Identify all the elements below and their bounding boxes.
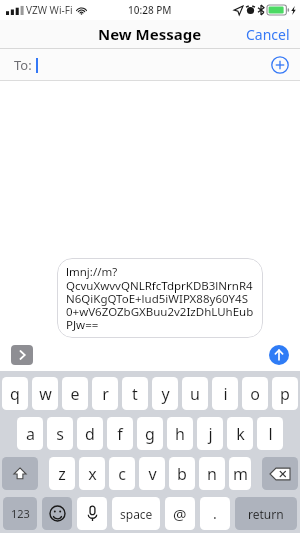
- button[interactable]: x: [79, 457, 105, 490]
- button[interactable]: y: [152, 377, 178, 410]
- button[interactable]: n: [199, 457, 225, 490]
- button[interactable]: To:: [0, 49, 300, 81]
- staticText: lmnj://m? QcvuXwvvQNLRfcTdprKDB3lNrnR4 N…: [66, 264, 254, 332]
- staticText: i: [223, 383, 228, 405]
- button[interactable]: Add contact: [271, 56, 289, 74]
- button[interactable]: Show apps: [11, 345, 33, 365]
- staticText: m: [233, 463, 248, 485]
- staticText: return: [248, 506, 284, 522]
- staticText: j: [208, 423, 213, 445]
- staticText: c: [118, 463, 126, 485]
- button[interactable]: a: [17, 417, 43, 450]
- button[interactable]: lmnj://m? QcvuXwvvQNLRfcTdprKDB3lNrnR4 N…: [66, 264, 254, 332]
- staticText: z: [58, 463, 66, 485]
- button[interactable]: r: [92, 377, 118, 410]
- staticText: t: [132, 383, 138, 405]
- button[interactable]: u: [182, 377, 208, 410]
- staticText: s: [56, 423, 64, 445]
- button[interactable]: .: [200, 497, 230, 530]
- button[interactable]: z: [49, 457, 75, 490]
- button[interactable]: Send: [269, 345, 289, 365]
- staticText: New Message: [98, 24, 202, 44]
- button[interactable]: Dictate: [77, 497, 107, 530]
- button[interactable]: @: [165, 497, 195, 530]
- staticText: r: [102, 383, 109, 405]
- button[interactable]: m: [229, 457, 251, 490]
- staticText: a: [26, 423, 35, 445]
- staticText: To:: [14, 56, 32, 74]
- button[interactable]: p: [272, 377, 298, 410]
- button[interactable]: q: [2, 377, 28, 410]
- staticText: o: [250, 383, 260, 405]
- staticText: @: [173, 504, 187, 524]
- button[interactable]: o: [242, 377, 268, 410]
- staticText: u: [190, 383, 200, 405]
- staticText: 10:28 PM: [128, 3, 172, 17]
- button[interactable]: h: [167, 417, 193, 450]
- staticText: k: [236, 423, 245, 445]
- staticText: v: [148, 463, 157, 485]
- staticText: l: [268, 423, 273, 445]
- staticText: d: [85, 423, 95, 445]
- button[interactable]: Backspace: [262, 457, 298, 490]
- staticText: e: [70, 383, 80, 405]
- button[interactable]: c: [109, 457, 135, 490]
- staticText: g: [145, 423, 155, 445]
- staticText: n: [207, 463, 217, 485]
- button[interactable]: Shift: [2, 457, 38, 490]
- button[interactable]: l: [257, 417, 283, 450]
- staticText: q: [10, 383, 20, 405]
- staticText: p: [280, 383, 290, 405]
- button[interactable]: space: [112, 497, 160, 530]
- button[interactable]: j: [197, 417, 223, 450]
- button[interactable]: v: [139, 457, 165, 490]
- staticText: VZW Wi-Fi: [26, 3, 73, 17]
- staticText: x: [88, 463, 97, 485]
- staticText: 123: [11, 506, 30, 521]
- button[interactable]: k: [227, 417, 253, 450]
- staticText: f: [117, 423, 123, 445]
- staticText: w: [39, 383, 52, 405]
- staticText: .: [213, 504, 217, 523]
- button[interactable]: 123: [3, 497, 37, 530]
- staticText: h: [175, 423, 185, 445]
- button[interactable]: b: [169, 457, 195, 490]
- button[interactable]: Emoji: [42, 497, 72, 530]
- button[interactable]: s: [47, 417, 73, 450]
- button[interactable]: g: [137, 417, 163, 450]
- button[interactable]: t: [122, 377, 148, 410]
- staticText: y: [161, 383, 170, 405]
- button[interactable]: Cancel: [246, 25, 290, 44]
- button[interactable]: w: [32, 377, 58, 410]
- button[interactable]: d: [77, 417, 103, 450]
- staticText: space: [120, 506, 153, 522]
- staticText: b: [177, 463, 187, 485]
- button[interactable]: return: [235, 497, 297, 530]
- staticText: Cancel: [246, 25, 290, 44]
- button[interactable]: i: [212, 377, 238, 410]
- button[interactable]: f: [107, 417, 133, 450]
- button[interactable]: e: [62, 377, 88, 410]
